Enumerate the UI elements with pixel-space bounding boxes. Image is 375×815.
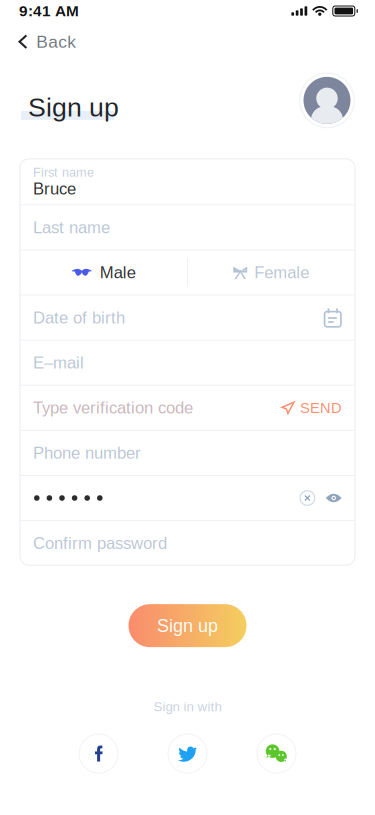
button[interactable]: Sign up xyxy=(128,604,246,647)
staticText: Bruce xyxy=(33,179,76,198)
button[interactable]: Confirm password xyxy=(20,521,355,565)
button[interactable]: Type verification code xyxy=(20,386,355,430)
staticText: First name xyxy=(33,165,94,179)
button[interactable]: Show password xyxy=(315,493,342,503)
staticText: Last name xyxy=(33,218,110,237)
button[interactable]: Back xyxy=(0,27,92,56)
button[interactable]: Twitter xyxy=(168,734,207,773)
staticText: Male xyxy=(100,263,136,282)
staticText: Female xyxy=(254,263,309,282)
staticText: Back xyxy=(36,32,76,51)
button[interactable]: First name xyxy=(20,159,355,204)
staticText: 9:41 AM xyxy=(19,2,79,19)
button[interactable]: Last name xyxy=(20,205,355,249)
button[interactable]: Phone number xyxy=(20,431,355,475)
button[interactable]: Female xyxy=(187,250,355,295)
button[interactable]: Facebook xyxy=(79,734,118,773)
button[interactable]: Clear password xyxy=(299,490,315,506)
staticText: SEND xyxy=(300,400,342,416)
staticText: Date of birth xyxy=(33,308,125,327)
staticText: Type verification code xyxy=(33,398,193,417)
staticText: Sign in with xyxy=(153,699,221,714)
button[interactable]: E–mail xyxy=(20,341,355,385)
button[interactable]: Date of birth xyxy=(20,296,355,340)
button[interactable]: Male xyxy=(20,250,187,295)
staticText: Confirm password xyxy=(33,534,167,552)
staticText: Sign up xyxy=(157,616,218,636)
staticText: Phone number xyxy=(33,444,141,462)
staticText: Sign up xyxy=(28,92,119,122)
staticText: E–mail xyxy=(33,353,84,372)
button[interactable]: WeChat xyxy=(257,734,296,773)
